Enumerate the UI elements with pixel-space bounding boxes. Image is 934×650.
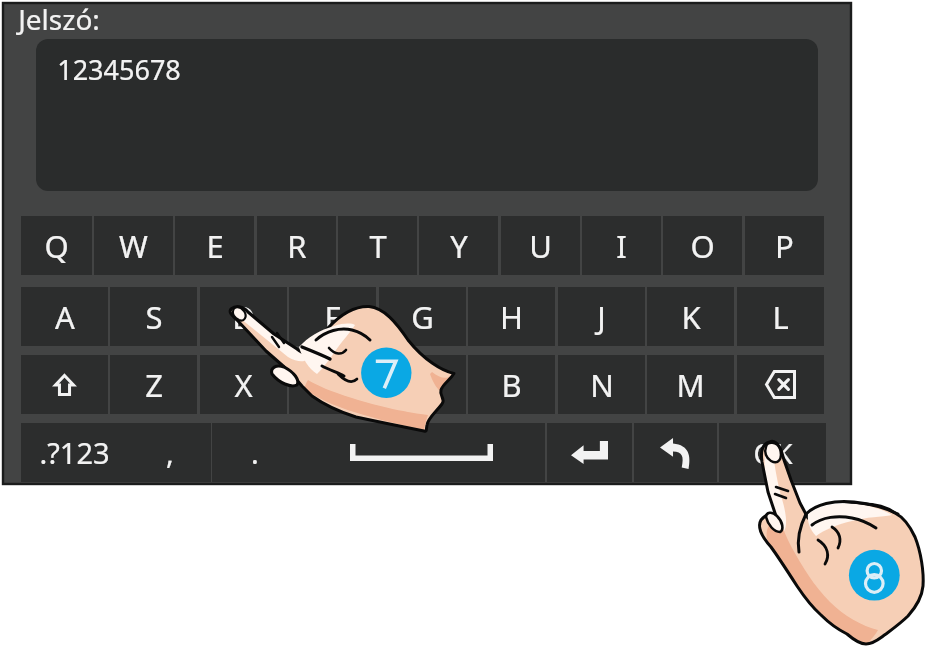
button[interactable]: 12345678	[36, 39, 818, 191]
button[interactable]: X	[200, 355, 287, 414]
staticText: S	[145, 296, 163, 338]
staticText: R	[287, 225, 307, 267]
staticText: P	[775, 225, 794, 267]
staticText: V	[413, 364, 432, 406]
staticText: 12345678	[57, 51, 181, 88]
staticText: Jelszó:	[18, 0, 100, 38]
staticText: O	[690, 225, 715, 267]
button[interactable]: B	[468, 355, 555, 414]
button[interactable]: J	[558, 287, 645, 346]
staticText: I	[616, 225, 627, 267]
staticText: G	[411, 296, 434, 338]
button[interactable]: L	[737, 287, 824, 346]
button[interactable]: A	[21, 287, 108, 346]
button[interactable]: K	[647, 287, 734, 346]
button[interactable]: H	[468, 287, 555, 346]
staticText: X	[234, 364, 253, 406]
staticText: A	[55, 296, 75, 338]
staticText: U	[529, 225, 552, 267]
button[interactable]: OK	[719, 423, 826, 482]
button[interactable]: V	[379, 355, 466, 414]
button[interactable]: G	[379, 287, 466, 346]
button[interactable]: C	[289, 355, 376, 414]
button[interactable]: S	[110, 287, 197, 346]
staticText: ,	[166, 433, 174, 472]
staticText: T	[369, 225, 387, 267]
button[interactable]: P	[745, 216, 824, 275]
button[interactable]: Q	[21, 216, 92, 275]
button[interactable]: F	[289, 287, 376, 346]
button[interactable]: U	[501, 216, 580, 275]
button[interactable]: Y	[419, 216, 498, 275]
button[interactable]: T	[338, 216, 417, 275]
staticText: B	[501, 364, 522, 406]
staticText: Q	[44, 225, 69, 267]
button[interactable]: Undo	[634, 423, 717, 482]
button[interactable]: Z	[110, 355, 197, 414]
button[interactable]: Backspace	[737, 355, 824, 414]
button[interactable]: W	[94, 216, 173, 275]
staticText: E	[206, 225, 224, 267]
button[interactable]: M	[647, 355, 734, 414]
staticText: K	[681, 296, 701, 338]
button[interactable]: O	[663, 216, 742, 275]
button[interactable]: D	[200, 287, 287, 346]
button[interactable]: Shift	[21, 355, 108, 414]
button[interactable]: Enter	[547, 423, 632, 482]
button[interactable]: .	[212, 423, 298, 482]
staticText: Z	[145, 364, 163, 406]
button[interactable]: E	[175, 216, 254, 275]
staticText: L	[772, 296, 789, 338]
staticText: H	[500, 296, 523, 338]
staticText: W	[119, 225, 148, 267]
staticText: Y	[450, 225, 468, 267]
button[interactable]: N	[558, 355, 645, 414]
staticText: D	[232, 296, 255, 338]
button[interactable]: I	[582, 216, 661, 275]
staticText: C	[323, 364, 343, 406]
button[interactable]: ,	[128, 423, 211, 482]
staticText: M	[676, 364, 705, 406]
button[interactable]: .?123	[21, 423, 128, 482]
staticText: .	[251, 433, 259, 472]
staticText: .?123	[39, 433, 110, 472]
staticText: F	[324, 296, 341, 338]
staticText: N	[590, 364, 614, 406]
button[interactable]: R	[257, 216, 336, 275]
button[interactable]: Space	[298, 423, 545, 482]
staticText: OK	[753, 434, 793, 472]
staticText: J	[597, 296, 606, 338]
